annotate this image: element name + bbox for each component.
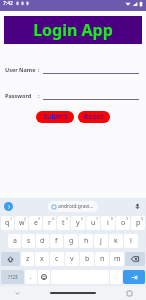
staticText: , bbox=[30, 273, 32, 281]
staticText: 0 bbox=[141, 216, 144, 221]
button[interactable]: a bbox=[8, 234, 21, 248]
staticText: 7 bbox=[96, 216, 99, 221]
button[interactable]: m bbox=[110, 252, 124, 266]
staticText: i bbox=[107, 218, 109, 228]
staticText: c bbox=[55, 254, 59, 264]
button[interactable]: Enter bbox=[123, 270, 145, 284]
staticText: 7:42 bbox=[3, 0, 13, 7]
button[interactable]: Voice input bbox=[133, 202, 142, 211]
staticText: 4 bbox=[52, 216, 55, 221]
button[interactable]: Recents bbox=[124, 288, 134, 298]
button[interactable]: l bbox=[124, 234, 138, 248]
button[interactable]: h bbox=[79, 234, 93, 248]
staticText: 2 bbox=[24, 216, 27, 221]
staticText: ?123 bbox=[8, 274, 18, 280]
button[interactable]: Submit bbox=[36, 111, 74, 123]
staticText: h bbox=[84, 236, 89, 246]
button[interactable]: p bbox=[131, 216, 145, 230]
button[interactable]: d bbox=[36, 234, 49, 248]
staticText: 5 bbox=[66, 216, 69, 221]
staticText: 9 bbox=[126, 216, 129, 221]
button[interactable]: Shift bbox=[1, 252, 20, 266]
staticText: p bbox=[136, 218, 141, 228]
staticText: android:gravi... bbox=[58, 203, 94, 210]
staticText: q bbox=[5, 218, 10, 228]
button[interactable]: Home bbox=[50, 288, 96, 298]
staticText: k bbox=[114, 236, 118, 246]
staticText: e bbox=[34, 218, 38, 228]
button[interactable]: u bbox=[86, 216, 100, 230]
staticText: t bbox=[62, 218, 65, 228]
staticText: : bbox=[38, 92, 40, 99]
staticText: 3 bbox=[38, 216, 41, 221]
button[interactable]: y bbox=[71, 216, 85, 230]
button[interactable]: Backspace bbox=[125, 252, 145, 266]
button[interactable]: o bbox=[116, 216, 130, 230]
staticText: 8 bbox=[111, 216, 114, 221]
staticText: r bbox=[48, 218, 51, 228]
staticText: Password bbox=[5, 92, 32, 99]
button[interactable]: g bbox=[64, 234, 78, 248]
staticText: : bbox=[38, 66, 40, 73]
button[interactable]: Expand suggestions bbox=[4, 202, 13, 211]
button[interactable]: android:gravi... bbox=[52, 203, 94, 210]
button[interactable]: x bbox=[35, 252, 49, 266]
button[interactable]: b bbox=[80, 252, 94, 266]
button[interactable]: c bbox=[50, 252, 64, 266]
button[interactable]: z bbox=[21, 252, 34, 266]
staticText: 6 bbox=[81, 216, 84, 221]
button[interactable]: r bbox=[43, 216, 56, 230]
staticText: Submit bbox=[43, 112, 68, 122]
staticText: s bbox=[27, 236, 31, 246]
button[interactable]: q bbox=[1, 216, 14, 230]
button[interactable] bbox=[43, 90, 139, 100]
button[interactable]: v bbox=[65, 252, 79, 266]
button[interactable]: f bbox=[50, 234, 63, 248]
button[interactable]: Reset bbox=[78, 111, 110, 123]
staticText: d bbox=[40, 236, 45, 246]
staticText: z bbox=[26, 254, 30, 264]
staticText: 1 bbox=[10, 216, 13, 221]
staticText: x bbox=[40, 254, 44, 264]
button[interactable]: , bbox=[25, 270, 37, 284]
staticText: . bbox=[115, 273, 117, 281]
button[interactable]: k bbox=[109, 234, 123, 248]
staticText: Login App bbox=[33, 19, 113, 41]
button[interactable]: n bbox=[95, 252, 109, 266]
button[interactable]: ?123 bbox=[1, 270, 24, 284]
staticText: v bbox=[70, 254, 74, 264]
button[interactable]: Back bbox=[12, 288, 22, 298]
staticText: User Name bbox=[5, 66, 36, 73]
staticText: o bbox=[121, 218, 126, 228]
staticText: l bbox=[130, 236, 132, 246]
staticText: b bbox=[85, 254, 90, 264]
button[interactable]: s bbox=[22, 234, 35, 248]
button[interactable]: t bbox=[57, 216, 70, 230]
button[interactable]: . bbox=[110, 270, 122, 284]
staticText: n bbox=[100, 254, 105, 264]
staticText: Reset bbox=[84, 112, 104, 122]
staticText: u bbox=[91, 218, 96, 228]
staticText: f bbox=[55, 236, 58, 246]
staticText: g bbox=[69, 236, 74, 246]
staticText: j bbox=[100, 236, 102, 246]
staticText: y bbox=[76, 218, 80, 228]
button[interactable]: w bbox=[15, 216, 28, 230]
staticText: a bbox=[13, 236, 17, 246]
button[interactable] bbox=[43, 64, 139, 74]
button[interactable]: e bbox=[29, 216, 42, 230]
staticText: m bbox=[114, 254, 121, 264]
button[interactable]: i bbox=[101, 216, 115, 230]
button[interactable]: Emoji bbox=[38, 270, 50, 284]
staticText: w bbox=[19, 218, 25, 228]
button[interactable]: j bbox=[94, 234, 108, 248]
